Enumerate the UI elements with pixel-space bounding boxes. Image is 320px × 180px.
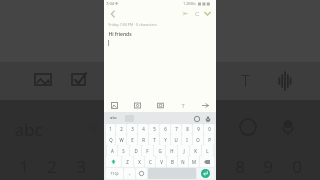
button[interactable]: Comma bbox=[124, 168, 135, 179]
button[interactable]: Q bbox=[106, 134, 115, 145]
button[interactable]: 4 bbox=[138, 124, 148, 134]
button[interactable]: X bbox=[134, 156, 144, 167]
staticText: D bbox=[134, 148, 138, 154]
button[interactable]: 3 bbox=[127, 124, 137, 134]
staticText: abc bbox=[110, 115, 117, 121]
button[interactable]: 6 bbox=[160, 124, 170, 134]
button[interactable]: O bbox=[193, 134, 203, 145]
staticText: Q bbox=[109, 137, 113, 143]
button[interactable]: M bbox=[189, 156, 199, 167]
button[interactable]: 0 bbox=[204, 124, 214, 134]
staticText: T bbox=[241, 70, 250, 92]
button[interactable]: Enter bbox=[197, 168, 214, 179]
button[interactable]: Take photo bbox=[155, 100, 166, 111]
button[interactable]: Insert GIF bbox=[132, 100, 143, 111]
button[interactable]: Voice input bbox=[203, 114, 212, 123]
button[interactable]: 1 bbox=[106, 124, 115, 134]
button[interactable]: J bbox=[178, 145, 189, 156]
button[interactable]: 2 bbox=[116, 124, 126, 134]
button[interactable]: 8 bbox=[182, 124, 192, 134]
button[interactable]: V bbox=[156, 156, 166, 167]
staticText: F bbox=[146, 148, 149, 154]
staticText: 6 bbox=[164, 126, 167, 132]
button[interactable]: I bbox=[182, 134, 192, 145]
button[interactable]: Z bbox=[122, 156, 133, 167]
button[interactable]: Y bbox=[160, 134, 170, 145]
staticText: C bbox=[149, 159, 152, 165]
staticText: S bbox=[122, 148, 125, 154]
button[interactable]: U bbox=[171, 134, 181, 145]
staticText: M bbox=[192, 159, 196, 165]
staticText: G bbox=[158, 148, 162, 154]
staticText: O bbox=[196, 137, 200, 143]
button[interactable]: Attach bbox=[191, 8, 202, 19]
staticText: H bbox=[170, 148, 174, 154]
staticText: V bbox=[160, 159, 163, 165]
button[interactable]: Emoji bbox=[136, 168, 147, 179]
button[interactable]: Send bbox=[180, 8, 191, 19]
button[interactable]: Text style bbox=[177, 100, 188, 111]
button[interactable]: P bbox=[204, 134, 214, 145]
staticText: Y bbox=[164, 137, 167, 143]
staticText: 4 bbox=[142, 126, 145, 132]
button[interactable]: 9 bbox=[193, 124, 203, 134]
button[interactable]: Backspace bbox=[200, 156, 214, 167]
staticText: 3 bbox=[131, 126, 134, 132]
button[interactable]: abc bbox=[110, 115, 117, 121]
button[interactable]: A bbox=[107, 145, 117, 156]
button[interactable]: Insert image bbox=[109, 100, 120, 111]
staticText: 1.2KB/s bbox=[183, 1, 196, 6]
button[interactable]: Symbols bbox=[106, 168, 123, 179]
staticText: , bbox=[129, 170, 131, 177]
staticText: B bbox=[171, 159, 174, 165]
staticText: P bbox=[208, 137, 211, 143]
staticText: 5 bbox=[153, 126, 156, 132]
staticText: 7:04 bbox=[106, 1, 114, 6]
button[interactable]: C bbox=[145, 156, 155, 167]
staticText: J bbox=[183, 148, 185, 154]
button[interactable]: 5 bbox=[149, 124, 159, 134]
button[interactable]: E bbox=[127, 134, 137, 145]
button[interactable]: F bbox=[142, 145, 153, 156]
staticText: Hi friends bbox=[108, 31, 132, 38]
button[interactable]: Back bbox=[107, 8, 118, 19]
button[interactable]: 7 bbox=[171, 124, 181, 134]
button[interactable]: D bbox=[130, 145, 141, 156]
button[interactable]: More options bbox=[202, 8, 213, 19]
button[interactable]: R bbox=[138, 134, 148, 145]
staticText: 9 bbox=[197, 126, 200, 132]
button[interactable]: K bbox=[190, 145, 201, 156]
button[interactable]: W bbox=[116, 134, 126, 145]
button[interactable]: G bbox=[154, 145, 165, 156]
button[interactable]: T bbox=[149, 134, 159, 145]
staticText: ⊂ bbox=[194, 10, 200, 17]
button[interactable]: H bbox=[166, 145, 177, 156]
staticText: T bbox=[153, 137, 156, 143]
button[interactable]: B bbox=[167, 156, 177, 167]
button[interactable]: N bbox=[178, 156, 188, 167]
button[interactable]: L bbox=[202, 145, 213, 156]
staticText: A bbox=[111, 148, 114, 154]
button[interactable]: Help bbox=[192, 114, 201, 123]
button[interactable]: Shift bbox=[106, 156, 121, 167]
staticText: I bbox=[186, 137, 188, 143]
staticText: 7 bbox=[175, 126, 178, 132]
staticText: L bbox=[206, 148, 209, 154]
staticText: 8 bbox=[186, 126, 189, 132]
button[interactable]: S bbox=[118, 145, 129, 156]
staticText: K bbox=[194, 148, 197, 154]
staticText: U bbox=[174, 137, 178, 143]
staticText: N bbox=[181, 159, 185, 165]
button[interactable]: Send bbox=[200, 100, 211, 111]
staticText: 0 bbox=[208, 126, 211, 132]
staticText: Z bbox=[126, 159, 129, 165]
staticText: 2 bbox=[120, 126, 123, 132]
